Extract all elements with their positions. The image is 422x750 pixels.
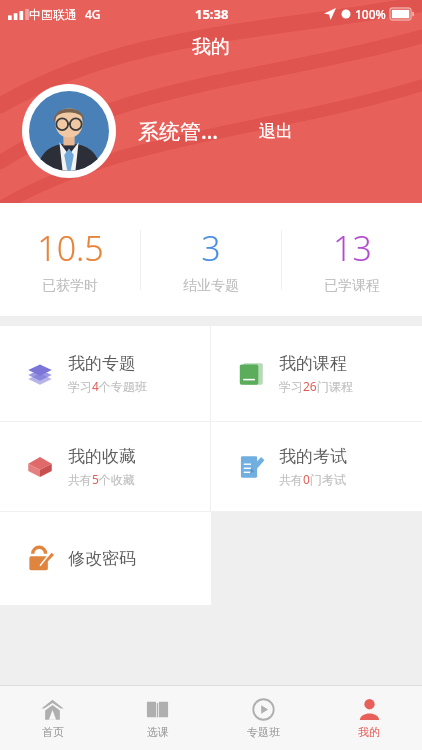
button[interactable]: 13 [282, 225, 422, 295]
staticText: 已学课程 [324, 277, 380, 295]
staticText: 10.5 [37, 225, 104, 271]
staticText: 4G [85, 6, 101, 22]
staticText: 我的 [358, 725, 380, 739]
button[interactable]: 10.5 [0, 225, 140, 295]
staticText: 我的收藏 [68, 446, 136, 467]
button[interactable]: 专题班 [210, 686, 316, 750]
staticText: 我的 [192, 35, 230, 59]
button[interactable]: 我的考试 [211, 422, 422, 511]
button[interactable]: 我的收藏 [0, 422, 210, 511]
staticText: 专题班 [247, 725, 280, 739]
staticText: 选课 [147, 725, 169, 739]
button[interactable]: 我的 [316, 686, 422, 750]
button[interactable]: Profile photo [22, 84, 116, 178]
staticText: 系统管… [138, 117, 219, 146]
staticText: 中国联通 [29, 7, 77, 22]
staticText: 我的考试 [279, 446, 347, 467]
button[interactable]: 我的课程 [211, 326, 422, 421]
staticText: 我的专题 [68, 353, 136, 374]
staticText: 已获学时 [42, 277, 98, 295]
button[interactable]: 选课 [105, 686, 210, 750]
staticText: 退出 [259, 121, 293, 142]
button[interactable]: 修改密码 [0, 512, 211, 605]
staticText: 首页 [42, 725, 64, 739]
staticText: 结业专题 [183, 277, 239, 295]
staticText: 100% [355, 6, 386, 22]
staticText: 共有5个收藏 [68, 471, 135, 487]
staticText: 学习26门课程 [279, 378, 353, 394]
staticText: 15:38 [195, 5, 229, 23]
staticText: 修改密码 [68, 548, 136, 569]
staticText: 共有0门考试 [279, 471, 346, 487]
staticText: 学习4个专题班 [68, 378, 147, 394]
button[interactable]: 3 [141, 225, 281, 295]
staticText: 3 [201, 225, 221, 271]
button[interactable]: 首页 [0, 686, 105, 750]
button[interactable]: 我的专题 [0, 326, 210, 421]
button[interactable]: 退出 [253, 113, 299, 150]
staticText: 我的课程 [279, 353, 347, 374]
staticText: 13 [333, 225, 372, 271]
